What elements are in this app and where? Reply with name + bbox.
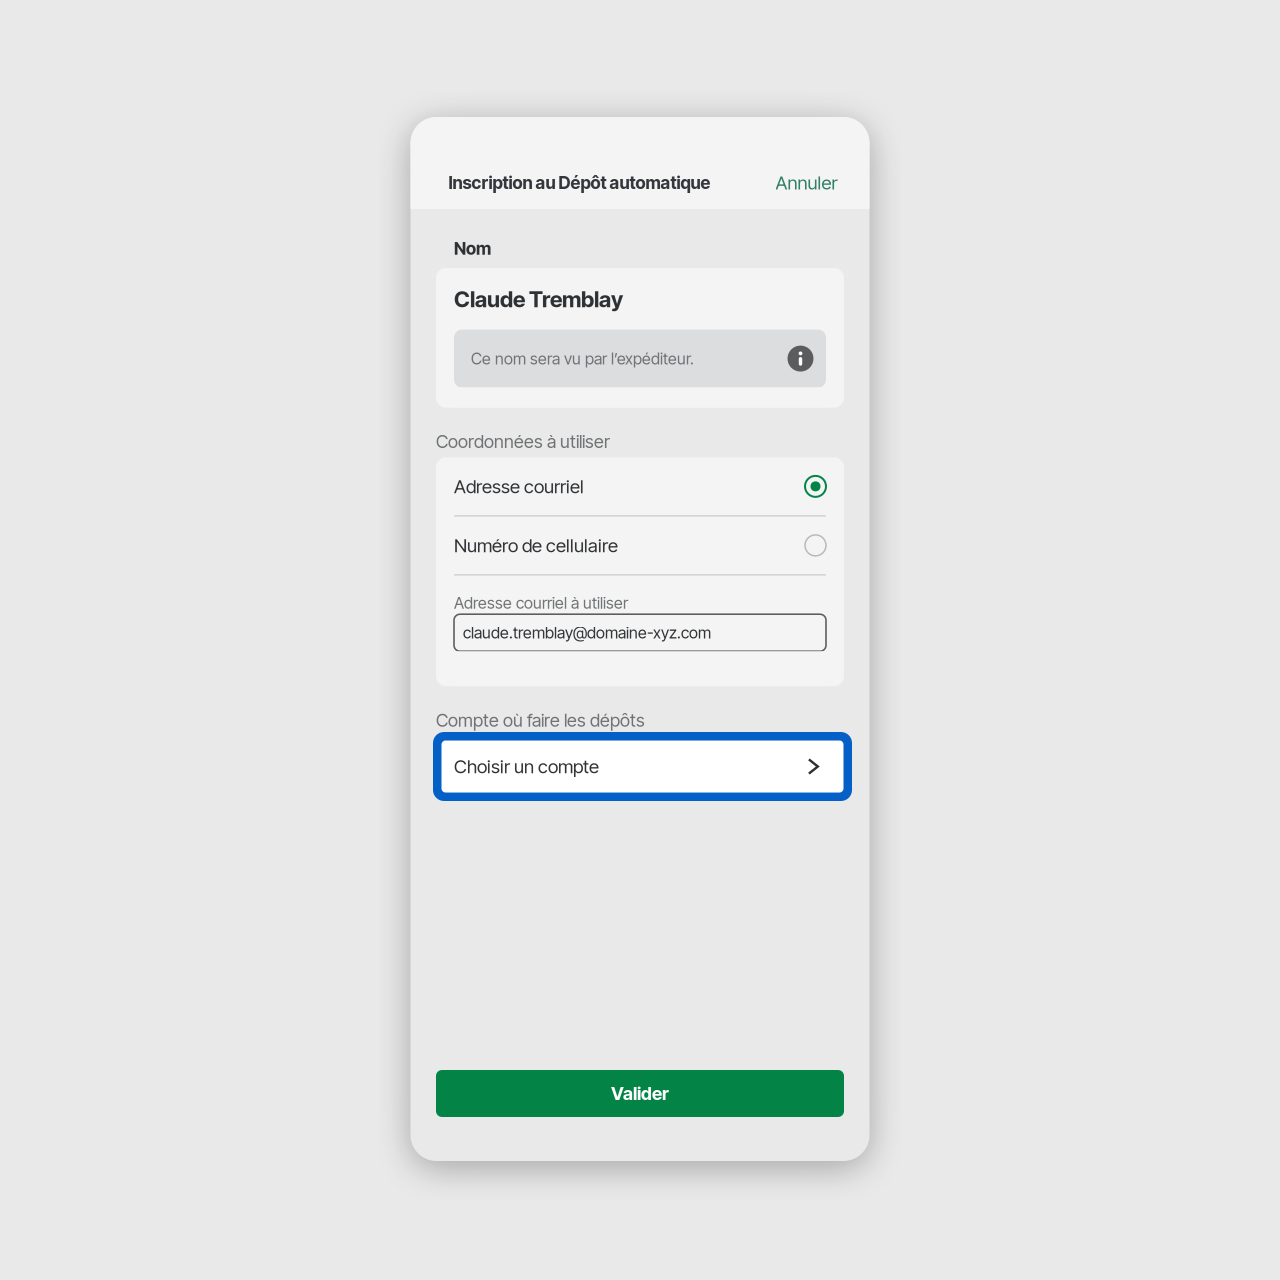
staticText: claude.tremblay@domaine-xyz.com bbox=[463, 623, 711, 642]
staticText: Claude Tremblay bbox=[454, 286, 623, 313]
button[interactable]: Annuler bbox=[775, 171, 837, 194]
staticText: Adresse courriel bbox=[454, 475, 584, 498]
button[interactable]: Adresse courriel bbox=[454, 457, 826, 515]
staticText: Inscription au Dépôt automatique bbox=[448, 172, 710, 193]
button[interactable]: Information sur le nom bbox=[787, 346, 813, 372]
staticText: Adresse courriel à utiliser bbox=[454, 593, 628, 613]
staticText: Valider bbox=[611, 1083, 669, 1104]
button[interactable]: Valider bbox=[436, 1070, 844, 1117]
staticText: Nom bbox=[454, 238, 491, 259]
staticText: Numéro de cellulaire bbox=[454, 534, 618, 557]
staticText: Coordonnées à utiliser bbox=[436, 431, 610, 452]
staticText: Compte où faire les dépôts bbox=[436, 709, 645, 731]
staticText: Ce nom sera vu par l’expéditeur. bbox=[471, 349, 694, 368]
staticText: Annuler bbox=[775, 171, 837, 194]
button[interactable]: Choisir un compte bbox=[433, 732, 852, 801]
staticText: Choisir un compte bbox=[454, 755, 599, 778]
button[interactable]: Numéro de cellulaire bbox=[454, 516, 826, 574]
